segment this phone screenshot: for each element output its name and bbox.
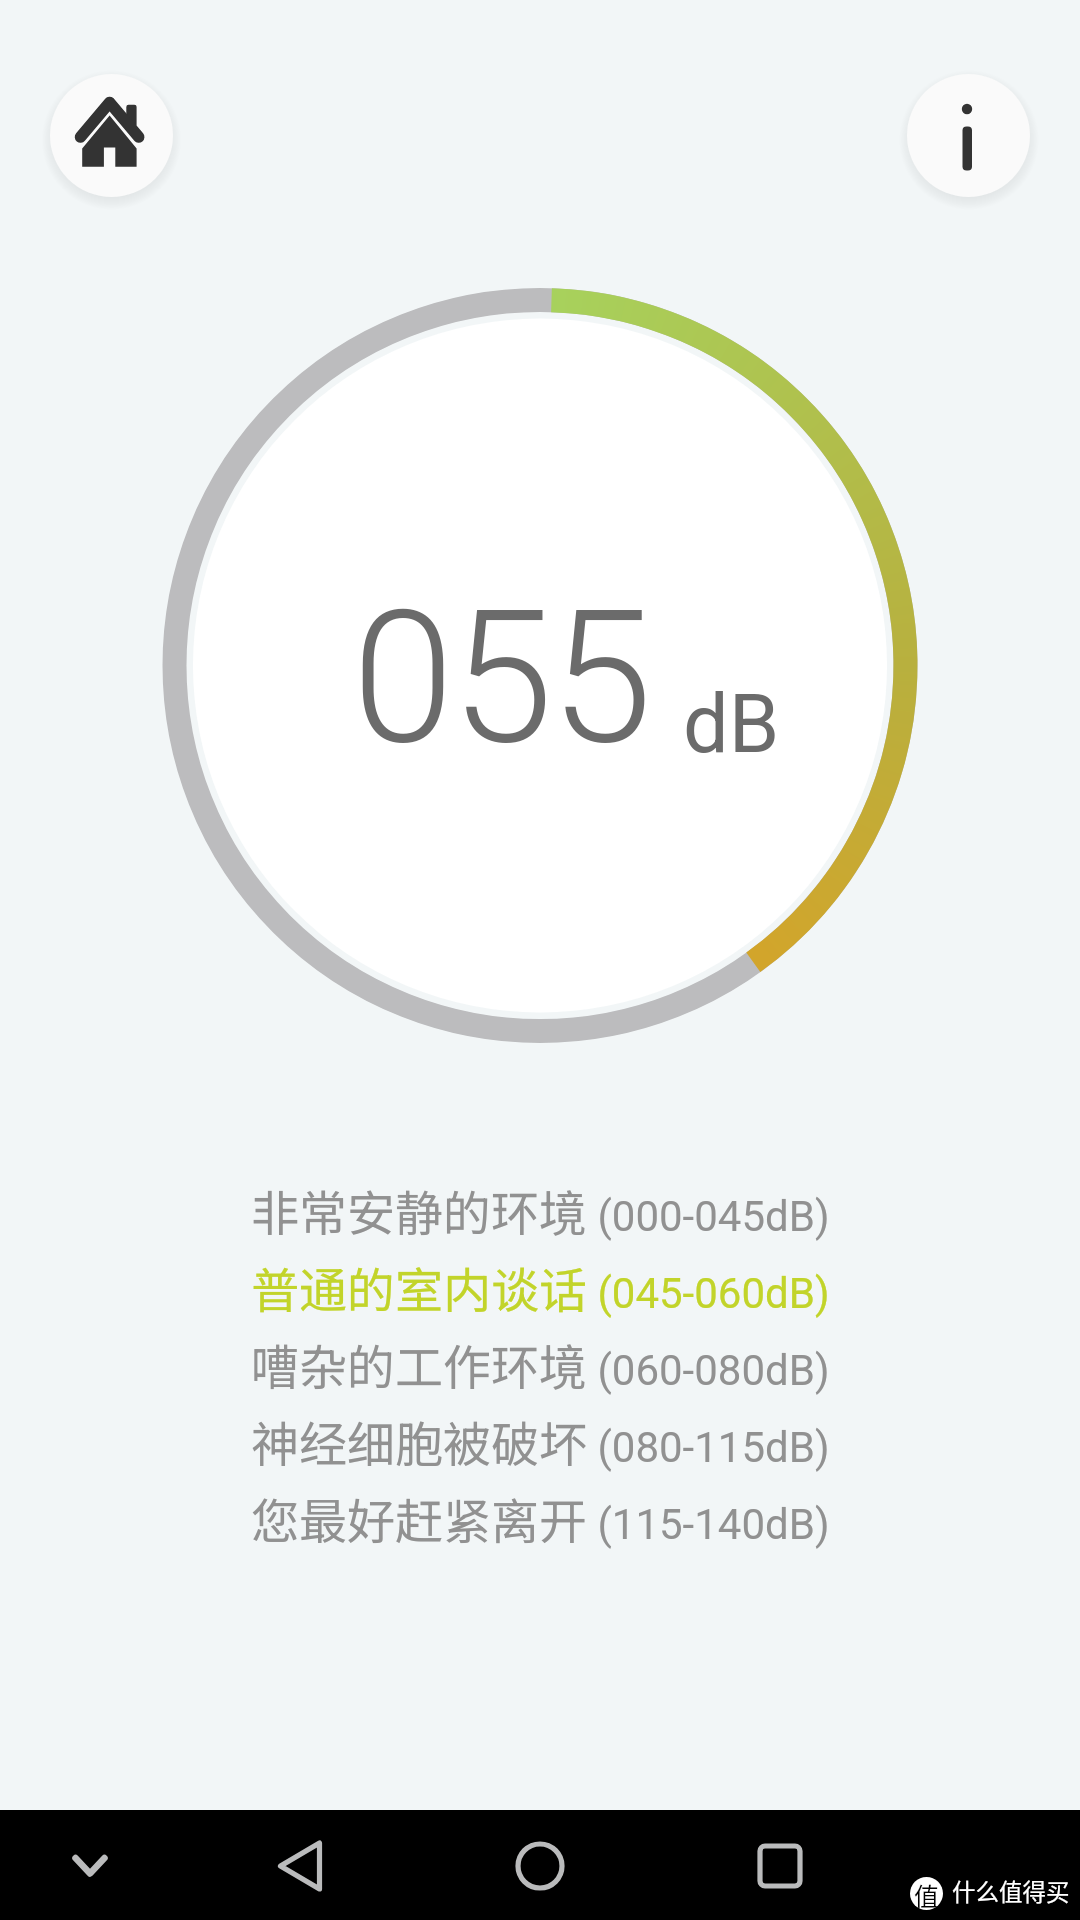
button[interactable]: Hide [40,1826,140,1906]
button[interactable]: 普通的室内谈话 (045-060dB) [251,1248,830,1325]
staticText: 055 [352,570,650,786]
staticText: 神经细胞被破坏 (080-115dB) [251,1406,830,1476]
button[interactable]: 神经细胞被破坏 (080-115dB) [251,1402,830,1479]
staticText: 普通的室内谈话 (045-060dB) [251,1252,830,1322]
button[interactable]: 非常安静的环境 (000-045dB) [251,1171,830,1248]
button[interactable]: 嘈杂的工作环境 (060-080dB) [251,1325,830,1402]
button[interactable]: Recent apps [730,1826,830,1906]
staticText: 您最好赶紧离开 (115-140dB) [251,1483,830,1553]
button[interactable]: Home [490,1826,590,1906]
staticText: dB [683,677,780,772]
staticText: 嘈杂的工作环境 (060-080dB) [251,1329,830,1399]
button[interactable]: Back [250,1826,350,1906]
staticText: 什么值得买 [952,1874,1070,1908]
button[interactable]: Info [907,74,1030,197]
button[interactable]: 您最好赶紧离开 (115-140dB) [251,1479,830,1556]
button[interactable]: Home [50,74,173,197]
staticText: 非常安静的环境 (000-045dB) [251,1175,830,1245]
staticText: 值 [914,1877,940,1910]
